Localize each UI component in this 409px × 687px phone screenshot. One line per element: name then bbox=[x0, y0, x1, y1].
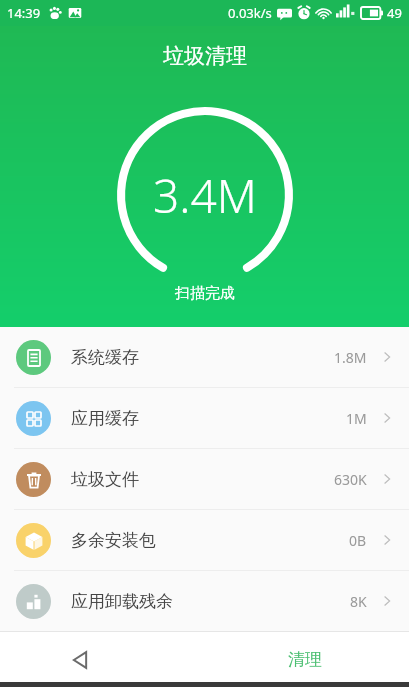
button[interactable]: 应用卸载残余 bbox=[0, 571, 409, 631]
staticText: 应用缓存 bbox=[71, 408, 139, 429]
button[interactable]: 垃圾文件 bbox=[0, 449, 409, 509]
staticText: 扫描完成 bbox=[175, 284, 235, 303]
staticText: 1M bbox=[346, 409, 367, 428]
button[interactable]: 清理 bbox=[288, 649, 322, 670]
button[interactable]: Back bbox=[60, 640, 100, 680]
button[interactable]: 应用缓存 bbox=[0, 388, 409, 448]
staticText: 垃圾清理 bbox=[163, 43, 247, 69]
staticText: 多余安装包 bbox=[71, 530, 156, 551]
staticText: 系统缓存 bbox=[71, 347, 139, 368]
button[interactable]: 系统缓存 bbox=[0, 327, 409, 387]
staticText: 垃圾文件 bbox=[71, 469, 139, 490]
button[interactable]: 多余安装包 bbox=[0, 510, 409, 570]
staticText: 0.03k/s bbox=[228, 4, 272, 22]
staticText: 630K bbox=[334, 470, 367, 489]
staticText: 应用卸载残余 bbox=[71, 591, 173, 612]
staticText: 49 bbox=[387, 4, 402, 22]
staticText: 0B bbox=[349, 531, 367, 550]
staticText: 1.8M bbox=[334, 348, 367, 367]
staticText: 8K bbox=[350, 592, 367, 611]
staticText: 3.4M bbox=[153, 164, 257, 227]
staticText: 14:39 bbox=[7, 4, 41, 22]
